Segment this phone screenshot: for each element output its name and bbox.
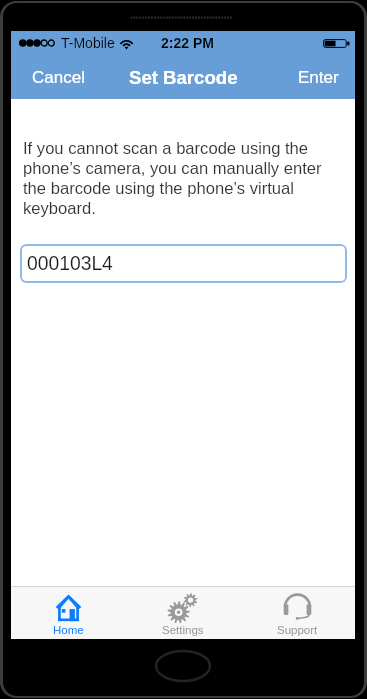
- staticText: Home: [53, 624, 84, 637]
- staticText: If you cannot scan a barcode using the p…: [23, 139, 333, 218]
- staticText: Settings: [162, 624, 204, 637]
- button[interactable]: Settings: [125, 587, 240, 639]
- button[interactable]: Enter: [282, 55, 355, 99]
- staticText: Cancel: [32, 68, 85, 87]
- button[interactable]: Home: [11, 587, 125, 639]
- staticText: 000103L4: [27, 253, 113, 275]
- staticText: T-Mobile: [61, 35, 115, 51]
- staticText: 2:22 PM: [161, 35, 214, 51]
- button[interactable]: Cancel: [11, 55, 106, 99]
- button[interactable]: Support: [240, 587, 355, 639]
- staticText: Support: [277, 624, 318, 637]
- staticText: Set Barcode: [129, 67, 238, 88]
- button[interactable]: 000103L4: [20, 244, 347, 283]
- staticText: Enter: [298, 68, 339, 87]
